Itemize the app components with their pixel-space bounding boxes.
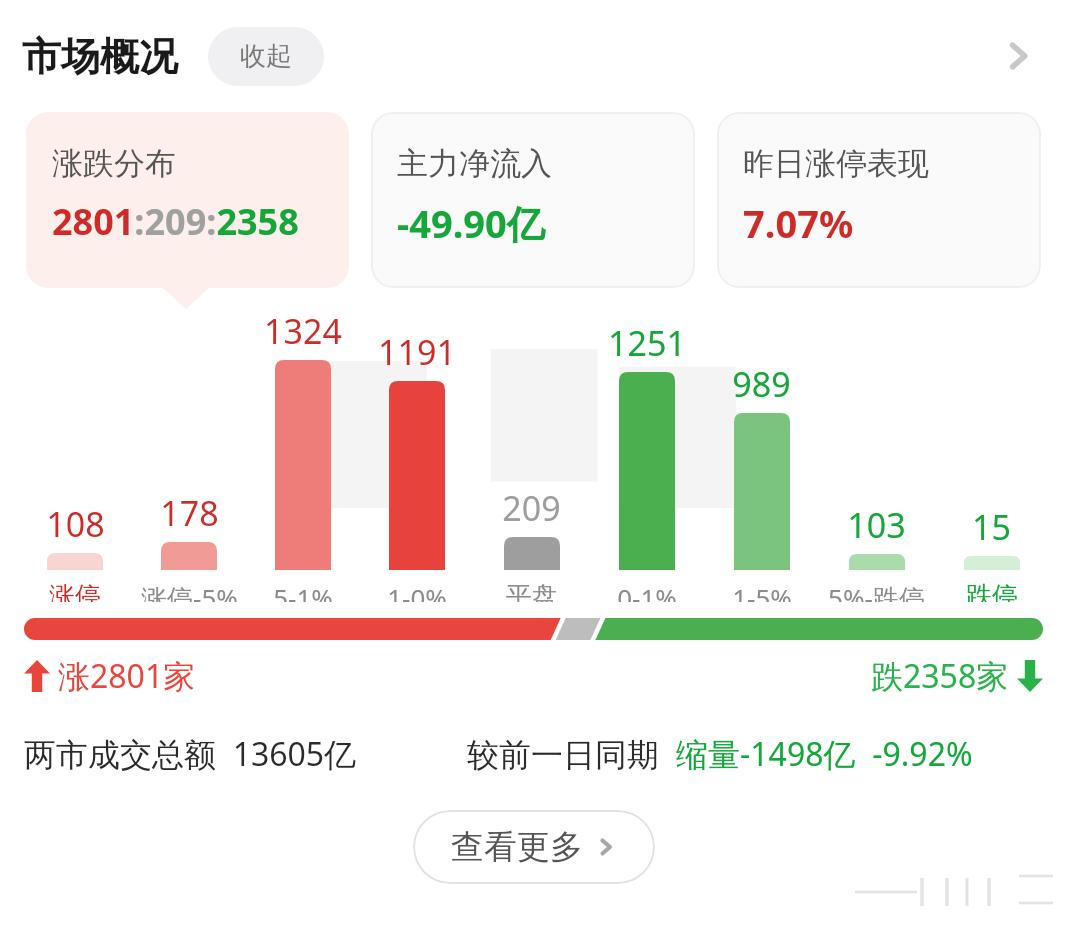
staticText: 209 xyxy=(502,485,561,531)
staticText: -49.90亿 xyxy=(397,197,545,249)
staticText: 昨日涨停表现 xyxy=(743,144,929,183)
staticText: 涨停-5% xyxy=(141,580,238,602)
staticText: 108 xyxy=(46,501,105,547)
staticText: 103 xyxy=(847,502,906,548)
staticText: 15 xyxy=(972,504,1011,550)
staticText: 主力净流入 xyxy=(397,144,552,183)
button[interactable]: 查看更多 xyxy=(413,810,655,884)
staticText: 1-0% xyxy=(387,580,447,602)
staticText: 查看更多 xyxy=(451,826,583,868)
staticText: 两市成交总额 13605亿 xyxy=(24,732,357,776)
staticText: 涨停 xyxy=(49,580,101,602)
staticText: 5%-跌停 xyxy=(828,580,925,602)
staticText: 缩量-1498亿 -9.92% xyxy=(676,732,973,776)
button[interactable]: 昨日涨停表现 xyxy=(717,112,1041,288)
staticText: 1191 xyxy=(378,329,456,375)
staticText: 989 xyxy=(732,361,791,407)
staticText: 2801:209:2358 xyxy=(52,197,299,246)
staticText: 涨2801家 xyxy=(58,654,196,698)
staticText: 平盘 xyxy=(506,580,558,602)
staticText: 0-1% xyxy=(617,580,677,602)
staticText: 涨跌分布 xyxy=(52,144,176,183)
staticText: 市场概况 xyxy=(22,32,178,81)
button[interactable]: 收起 xyxy=(208,27,324,86)
staticText: 7.07% xyxy=(743,197,854,249)
button[interactable]: 主力净流入 xyxy=(371,112,695,288)
staticText: 跌停 xyxy=(966,580,1018,602)
staticText: 收起 xyxy=(240,40,292,73)
staticText: 1251 xyxy=(608,320,686,366)
button[interactable]: 更多 xyxy=(983,21,1053,91)
button[interactable]: 涨跌分布 xyxy=(26,112,349,288)
staticText: 1324 xyxy=(264,308,342,354)
staticText: 5-1% xyxy=(273,580,333,602)
staticText: 跌2358家 xyxy=(871,654,1009,698)
staticText: 较前一日同期 xyxy=(467,732,676,776)
staticText: 1-5% xyxy=(732,580,792,602)
staticText: 178 xyxy=(160,490,219,536)
